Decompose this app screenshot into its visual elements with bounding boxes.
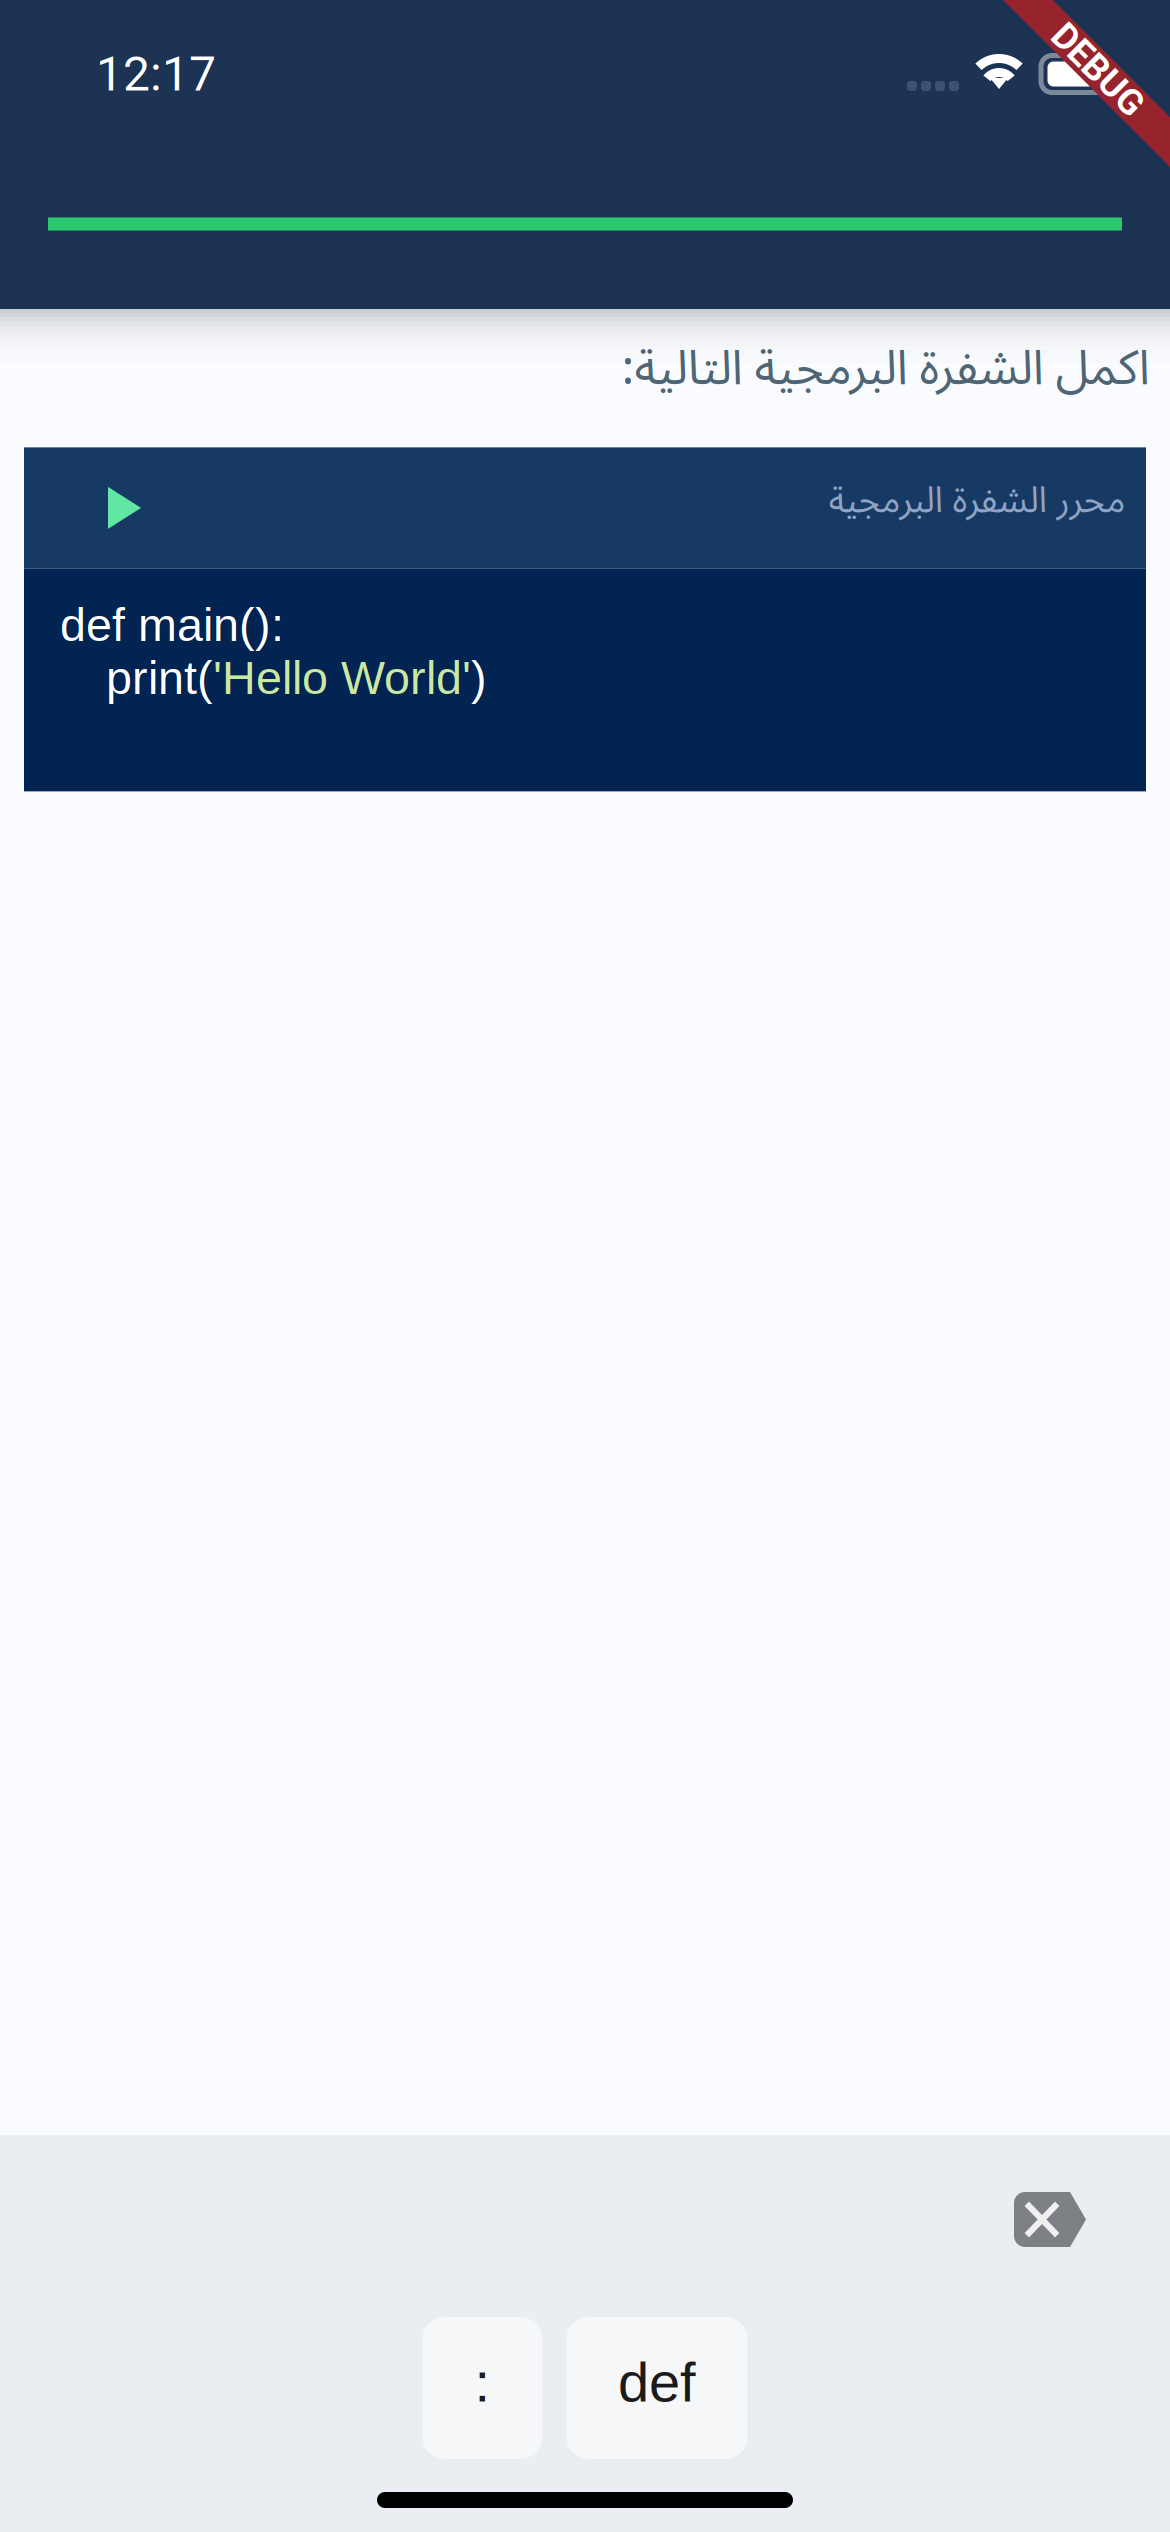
staticText: DEBUG [1040,49,1155,91]
staticText: 12:17 [96,46,216,102]
button[interactable]: : [422,2317,542,2459]
staticText: : [474,2351,490,2413]
staticText: ) [471,652,487,704]
staticText: اكمل الشفرة البرمجية التالية: [621,318,1149,419]
button[interactable]: def [566,2317,747,2459]
staticText: 'Hello World' [213,652,471,704]
staticText: def main(): [60,599,284,651]
staticText: محرر الشفرة البرمجية [828,463,1125,539]
staticText: print( [106,652,213,704]
button[interactable]: Run code [24,463,142,553]
button[interactable]: Delete [1014,2192,1086,2247]
staticText: def [618,2351,696,2413]
